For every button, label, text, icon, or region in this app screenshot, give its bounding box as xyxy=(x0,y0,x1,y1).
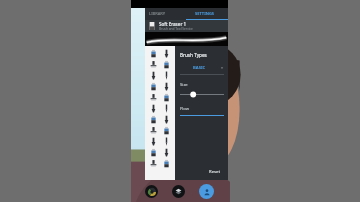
button[interactable]: Profile xyxy=(199,184,214,199)
staticText: Size xyxy=(180,82,188,88)
button[interactable]: Brush 11 xyxy=(148,103,159,113)
button[interactable]: Brush 13 xyxy=(148,114,159,124)
button[interactable]: Brush 18 xyxy=(161,136,172,146)
button[interactable]: Brush 14 xyxy=(161,114,172,124)
button[interactable]: Brush 10 xyxy=(161,92,172,102)
button[interactable]: Layers xyxy=(172,185,185,198)
staticText: LIBRARY xyxy=(149,11,166,16)
button[interactable]: Brush 15 xyxy=(148,125,159,135)
button[interactable]: Brush 9 xyxy=(148,92,159,102)
button[interactable]: BASIC xyxy=(180,65,224,71)
button[interactable]: SETTINGS xyxy=(186,8,224,19)
button[interactable]: Brush 8 xyxy=(161,81,172,91)
button[interactable]: Brush 5 xyxy=(148,70,159,80)
button[interactable]: Size slider xyxy=(180,91,224,98)
button[interactable]: Brush 7 xyxy=(148,81,159,91)
staticText: SETTINGS xyxy=(195,11,215,16)
staticText: Reset xyxy=(209,169,221,175)
staticText: Brush Types xyxy=(180,52,207,58)
staticText: Soft Eraser 1 xyxy=(159,21,187,27)
button[interactable]: Brush 1 xyxy=(148,48,159,58)
staticText: BASIC xyxy=(193,65,206,71)
button[interactable]: Color xyxy=(145,185,158,198)
button[interactable]: Brush 12 xyxy=(161,103,172,113)
button[interactable]: Brush 17 xyxy=(148,136,159,146)
button[interactable]: LIBRARY xyxy=(149,8,186,19)
button[interactable]: Brush 22 xyxy=(161,158,172,168)
button[interactable]: Reset xyxy=(206,167,224,177)
button[interactable]: Brush 16 xyxy=(161,125,172,135)
button[interactable]: Brush 19 xyxy=(148,147,159,157)
button[interactable]: Brush 21 xyxy=(148,158,159,168)
button[interactable]: Brush 6 xyxy=(161,70,172,80)
button[interactable]: Brush 4 xyxy=(161,59,172,69)
staticText: Brush and Tool Service xyxy=(159,27,193,31)
button[interactable]: Brush 20 xyxy=(161,147,172,157)
button[interactable]: Brush 2 xyxy=(161,48,172,58)
button[interactable]: Brush 3 xyxy=(148,59,159,69)
staticText: Flow xyxy=(180,106,189,112)
button[interactable]: Soft Eraser 1 xyxy=(145,20,228,32)
